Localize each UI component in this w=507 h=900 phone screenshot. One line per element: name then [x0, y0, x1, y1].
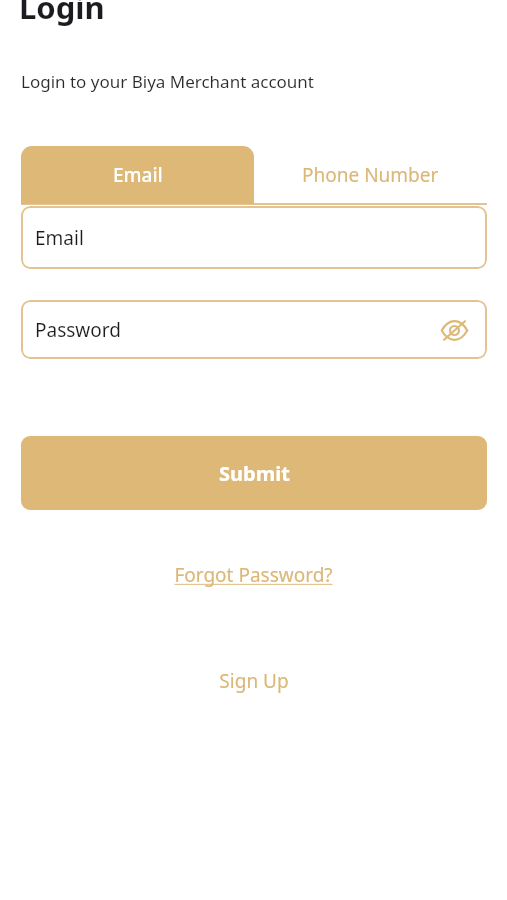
staticText: Password — [35, 317, 121, 343]
button[interactable]: Show password — [437, 313, 471, 347]
button[interactable]: Forgot Password? — [166, 558, 341, 592]
staticText: Phone Number — [302, 162, 439, 188]
staticText: Login — [19, 0, 105, 28]
staticText: Email — [113, 162, 163, 188]
staticText: Email — [35, 225, 84, 251]
staticText: Login to your Biya Merchant account — [21, 70, 315, 93]
staticText: Submit — [219, 460, 290, 487]
staticText: Forgot Password? — [174, 562, 333, 588]
button[interactable]: Sign Up — [211, 664, 297, 698]
button[interactable]: Submit — [21, 436, 487, 510]
button[interactable]: Phone Number — [254, 146, 487, 204]
staticText: Sign Up — [219, 668, 289, 694]
button[interactable]: Email — [21, 146, 254, 204]
button[interactable]: Password — [21, 300, 487, 359]
button[interactable]: Email — [21, 206, 487, 269]
